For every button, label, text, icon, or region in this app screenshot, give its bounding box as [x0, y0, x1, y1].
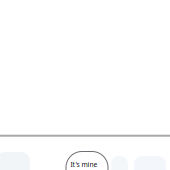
- staticText: It's mine: [71, 160, 98, 169]
- button[interactable]: It's mine: [66, 151, 108, 170]
